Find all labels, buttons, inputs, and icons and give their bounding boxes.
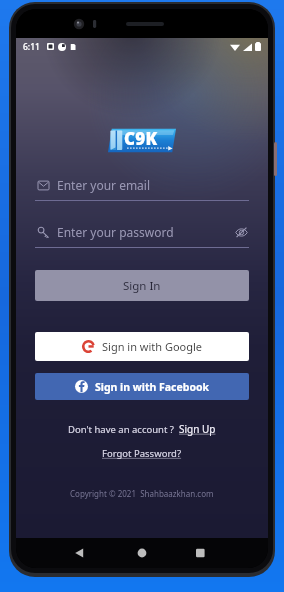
staticText: Copyright © 2021 Shahbaazkhan.com xyxy=(70,488,214,499)
button[interactable]: Sign In xyxy=(35,270,249,301)
button[interactable]: Sign Up xyxy=(179,422,216,436)
staticText: Sign in with Facebook xyxy=(95,380,210,394)
button[interactable]: Enter your password xyxy=(35,221,249,243)
button[interactable]: Enter your email xyxy=(35,174,249,196)
staticText: C9K xyxy=(124,127,158,150)
staticText: 6:11 xyxy=(23,41,40,53)
staticText: Don't have an account ? xyxy=(68,423,174,436)
staticText: Sign In xyxy=(123,278,161,294)
button[interactable]: Show password xyxy=(233,224,249,240)
staticText: Enter your email xyxy=(57,177,151,193)
staticText: Enter your password xyxy=(57,224,174,240)
button[interactable]: Forgot Password? xyxy=(102,447,182,460)
button[interactable]: Sign in with Facebook xyxy=(35,373,249,400)
button[interactable]: Sign in with Google xyxy=(35,332,249,361)
staticText: Sign Up xyxy=(179,422,216,436)
staticText: Forgot Password? xyxy=(102,447,182,460)
staticText: Sign in with Google xyxy=(102,339,203,354)
